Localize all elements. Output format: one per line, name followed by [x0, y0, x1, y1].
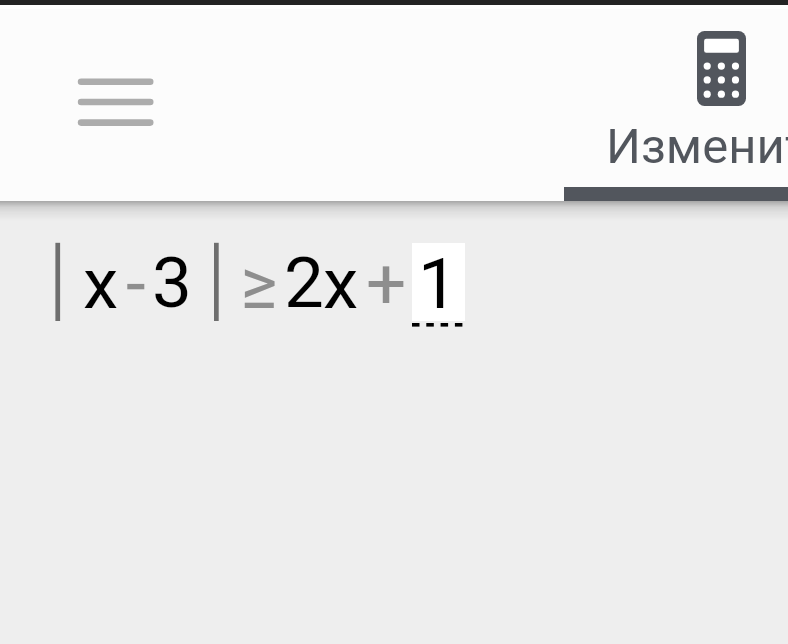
- staticText: +: [366, 242, 407, 325]
- button[interactable]: Изменить: [564, 0, 788, 201]
- staticText: 3: [152, 241, 192, 324]
- staticText: x: [83, 242, 119, 325]
- staticText: 2: [284, 241, 324, 324]
- staticText: Изменить: [606, 118, 788, 175]
- button[interactable]: Expression |x - 3| ≥ 2x + 1: [0, 221, 788, 341]
- staticText: x: [323, 242, 359, 325]
- staticText: 1: [418, 242, 458, 320]
- button[interactable]: Menu: [48, 56, 184, 148]
- button[interactable]: 1: [412, 243, 465, 321]
- staticText: ≥: [240, 242, 278, 325]
